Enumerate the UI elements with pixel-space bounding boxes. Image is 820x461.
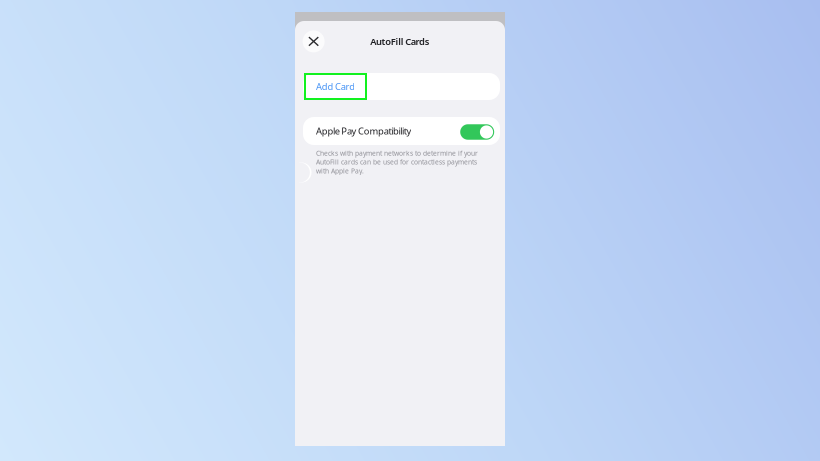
button[interactable]: Add Card <box>303 73 500 100</box>
staticText: Apple Pay Compatibility <box>316 125 411 137</box>
staticText: Checks with payment networks to determin… <box>316 149 478 175</box>
button[interactable]: Apple Pay Compatibility <box>303 117 500 145</box>
staticText: Add Card <box>316 80 355 93</box>
staticText: AutoFill Cards <box>370 35 430 47</box>
button[interactable]: Close <box>303 30 325 52</box>
